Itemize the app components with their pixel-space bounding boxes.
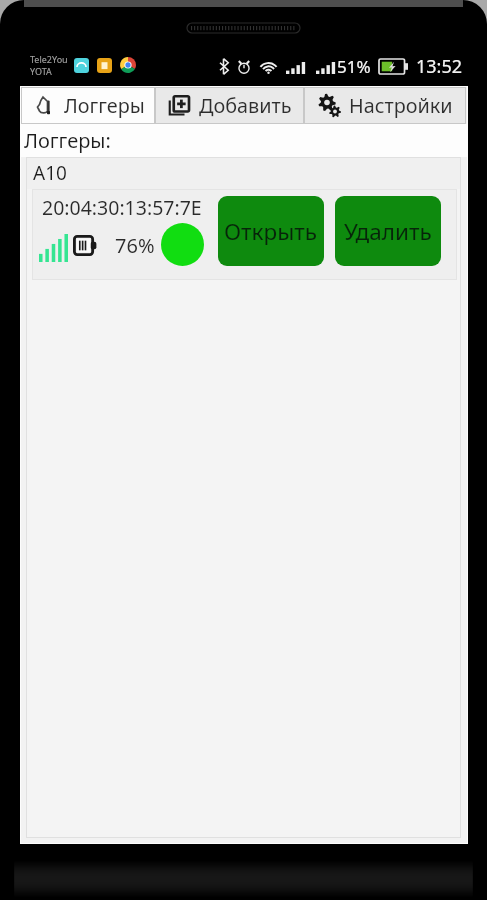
- button[interactable]: Настройки: [304, 87, 466, 124]
- staticText: 51%: [337, 55, 371, 78]
- button[interactable]: Открыть: [218, 196, 324, 266]
- staticText: A10: [33, 160, 67, 186]
- staticText: YOTA: [30, 65, 52, 77]
- staticText: 13:52: [416, 54, 463, 79]
- staticText: Настройки: [349, 92, 453, 119]
- button[interactable]: Удалить: [335, 196, 441, 266]
- staticText: Tele2You: [30, 53, 68, 65]
- staticText: Открыть: [224, 216, 318, 247]
- staticText: 76%: [115, 232, 155, 259]
- staticText: Логгеры: [64, 92, 145, 119]
- button[interactable]: Добавить: [155, 87, 304, 124]
- staticText: Удалить: [344, 216, 432, 247]
- staticText: Добавить: [199, 92, 292, 119]
- button[interactable]: Логгеры: [21, 87, 155, 124]
- staticText: Логгеры:: [24, 127, 111, 154]
- staticText: 20:04:30:13:57:7E: [42, 194, 202, 221]
- button[interactable]: 20:04:30:13:57:7E: [32, 189, 457, 280]
